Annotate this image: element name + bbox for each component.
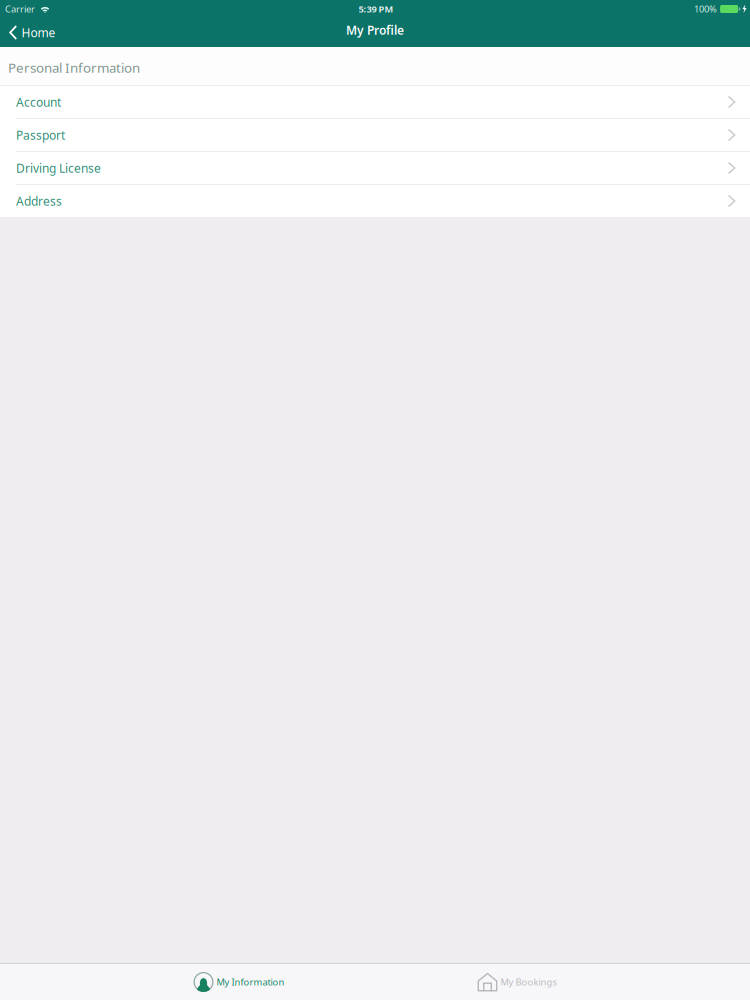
staticText: My Profile bbox=[346, 22, 404, 38]
staticText: Account bbox=[16, 94, 61, 110]
button[interactable]: Home bbox=[0, 18, 63, 46]
button[interactable]: Address bbox=[0, 185, 750, 217]
button[interactable]: Driving License bbox=[0, 152, 750, 184]
staticText: My Information bbox=[216, 976, 284, 988]
button[interactable]: Account bbox=[0, 86, 750, 118]
staticText: Personal Information bbox=[8, 59, 140, 76]
staticText: My Bookings bbox=[500, 976, 556, 988]
button[interactable]: My Information bbox=[193, 964, 284, 1000]
staticText: Carrier bbox=[5, 3, 35, 15]
staticText: Driving License bbox=[16, 160, 101, 176]
button[interactable]: My Bookings bbox=[477, 964, 556, 1000]
staticText: Home bbox=[21, 24, 55, 40]
staticText: Address bbox=[16, 193, 62, 209]
staticText: 5:39 PM bbox=[358, 3, 393, 15]
button[interactable]: Passport bbox=[0, 119, 750, 151]
staticText: Passport bbox=[16, 127, 65, 143]
staticText: 100% bbox=[694, 3, 717, 15]
